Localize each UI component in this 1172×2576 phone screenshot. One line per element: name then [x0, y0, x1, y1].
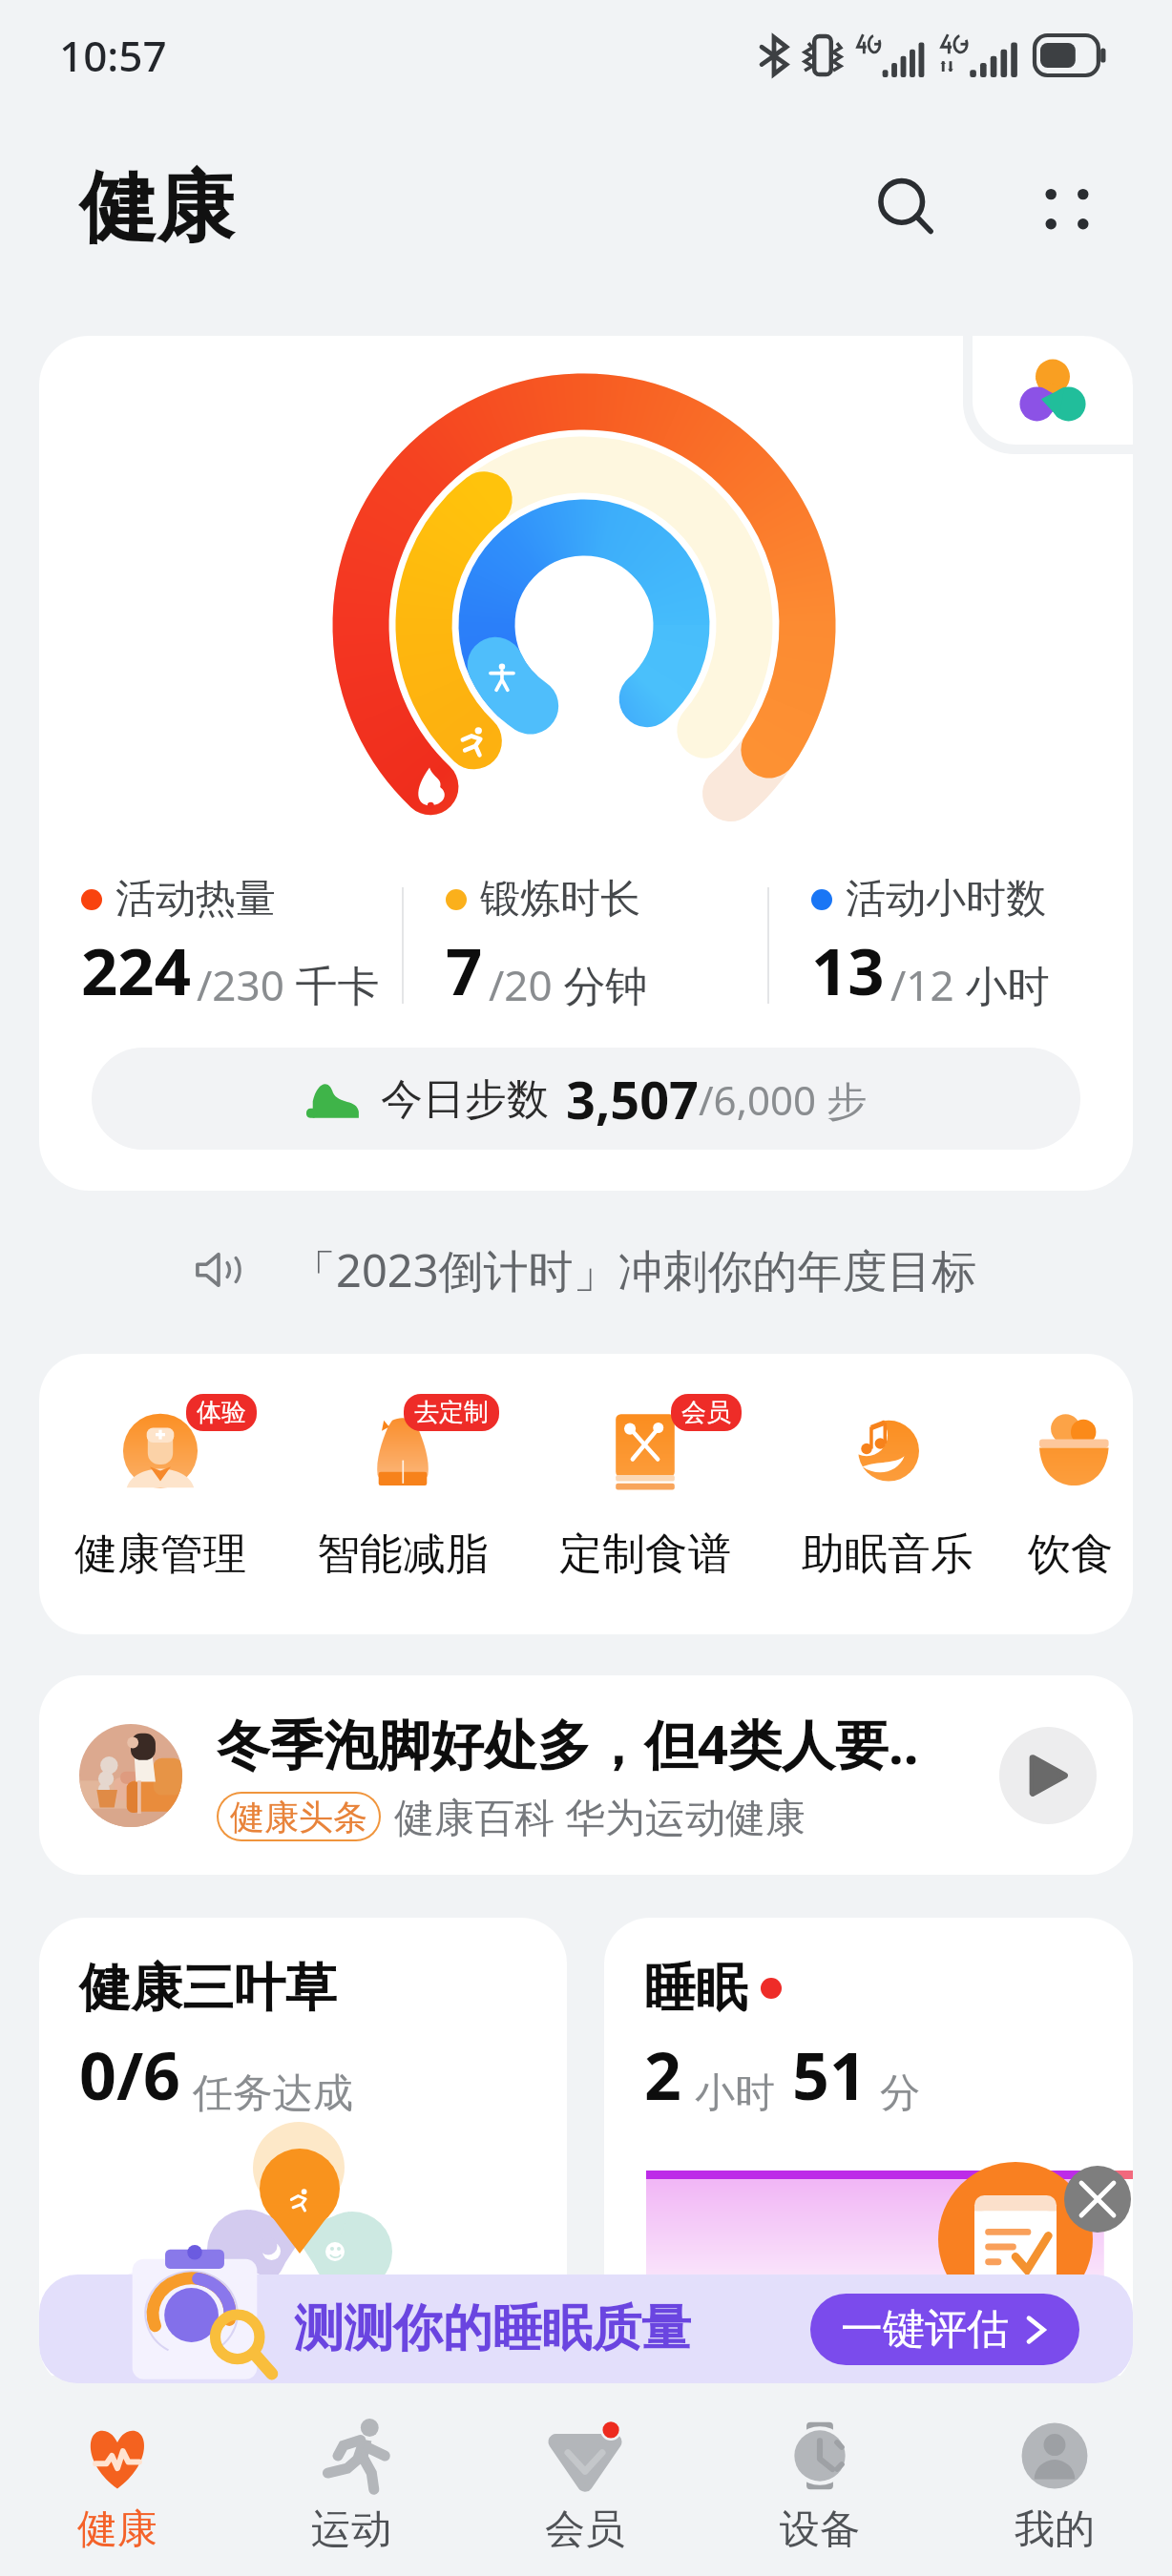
- staticText: 锻炼时长: [480, 874, 640, 924]
- button[interactable]: 会员: [468, 2376, 702, 2576]
- button[interactable]: [39, 2275, 1133, 2383]
- staticText: 分: [880, 2068, 920, 2119]
- staticText: 饮食: [1028, 1527, 1114, 1582]
- staticText: 会员: [681, 1397, 731, 1428]
- staticText: 任务达成: [193, 2068, 353, 2119]
- staticText: 我的: [1015, 2504, 1095, 2555]
- staticText: /20: [489, 956, 553, 1013]
- button[interactable]: 睡眠: [604, 1918, 1133, 2390]
- button[interactable]: 今日步数: [92, 1048, 1080, 1150]
- staticText: 小时: [954, 956, 1050, 1013]
- staticText: 0/6: [79, 2030, 181, 2119]
- staticText: 活动热量: [115, 874, 276, 924]
- staticText: /6,000 步: [699, 1072, 867, 1127]
- staticText: 一键评估: [841, 2303, 1009, 2356]
- staticText: 冬季泡脚好处多，但4类人要..: [217, 1707, 919, 1779]
- button[interactable]: 去定制: [282, 1354, 524, 1634]
- staticText: 体验: [197, 1397, 246, 1428]
- staticText: 智能减脂: [317, 1527, 489, 1582]
- staticText: 2: [644, 2030, 681, 2119]
- staticText: 活动小时数: [846, 874, 1046, 924]
- staticText: 助眠音乐: [802, 1527, 973, 1582]
- staticText: 健康: [79, 159, 234, 257]
- staticText: 设备: [780, 2504, 860, 2555]
- button[interactable]: 冬季泡脚好处多，但4类人要..: [39, 1675, 1133, 1875]
- staticText: 13: [811, 926, 885, 1013]
- staticText: 224: [81, 926, 191, 1013]
- staticText: 今日步数: [381, 1073, 549, 1126]
- staticText: 健康头条: [230, 1796, 367, 1839]
- button[interactable]: 助眠音乐: [766, 1354, 1009, 1634]
- button[interactable]: 健康三叶草: [39, 1918, 567, 2390]
- button[interactable]: Switch view: [973, 336, 1133, 445]
- button[interactable]: 「2023倒计时」冲刺你的年度目标: [0, 1222, 1172, 1318]
- staticText: /12: [890, 956, 954, 1013]
- staticText: 3,507: [566, 1064, 699, 1134]
- staticText: 健康三叶草: [79, 1956, 337, 2021]
- staticText: 会员: [545, 2504, 625, 2555]
- button[interactable]: 活动热量: [39, 336, 1133, 1191]
- staticText: 测测你的睡眠质量: [294, 2297, 691, 2360]
- button[interactable]: 体验: [39, 1354, 282, 1634]
- button[interactable]: More options: [1021, 162, 1113, 254]
- button[interactable]: Search: [861, 162, 952, 254]
- button[interactable]: 设备: [702, 2376, 937, 2576]
- staticText: /230: [197, 956, 284, 1013]
- button[interactable]: Close: [1064, 2166, 1131, 2233]
- staticText: 10:57: [59, 27, 167, 84]
- button[interactable]: 一键评估: [810, 2294, 1079, 2365]
- staticText: 运动: [311, 2504, 391, 2555]
- staticText: 健康管理: [74, 1527, 246, 1582]
- staticText: 51: [792, 2030, 867, 2119]
- staticText: 小时: [695, 2068, 775, 2119]
- staticText: 千卡: [284, 956, 380, 1013]
- button[interactable]: Play: [999, 1727, 1097, 1824]
- button[interactable]: 健康: [0, 2376, 234, 2576]
- staticText: 7: [446, 926, 483, 1013]
- staticText: 健康百科 华为运动健康: [394, 1789, 806, 1843]
- staticText: 健康: [77, 2504, 157, 2555]
- button[interactable]: Assistant: [938, 2162, 1093, 2316]
- staticText: 分钟: [553, 956, 648, 1013]
- staticText: 睡眠: [644, 1956, 747, 2021]
- staticText: 定制食谱: [559, 1527, 731, 1582]
- button[interactable]: 会员: [524, 1354, 766, 1634]
- button[interactable]: 我的: [937, 2376, 1172, 2576]
- button[interactable]: 饮食: [1009, 1354, 1133, 1634]
- staticText: 去定制: [414, 1397, 489, 1428]
- staticText: 「2023倒计时」冲刺你的年度目标: [291, 1239, 977, 1300]
- button[interactable]: 运动: [234, 2376, 468, 2576]
